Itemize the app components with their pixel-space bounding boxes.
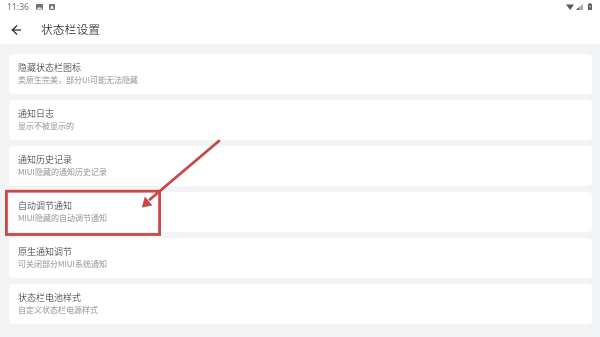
staticText: MIUI隐藏的自动调节通知 xyxy=(18,212,107,224)
staticText: 通知历史记录 xyxy=(18,153,73,166)
staticText: 类原生完美，部分UI可能无法隐藏 xyxy=(18,74,139,86)
button[interactable]: 通知历史记录 xyxy=(9,146,592,186)
button[interactable]: Back xyxy=(1,14,32,45)
button[interactable]: 原生通知调节 xyxy=(9,238,592,278)
staticText: 显示不被显示的 xyxy=(18,120,74,132)
staticText: 状态栏电池样式 xyxy=(18,291,82,304)
staticText: 隐藏状态栏图标 xyxy=(18,61,82,74)
staticText: 11:36 xyxy=(7,1,29,13)
staticText: 原生通知调节 xyxy=(18,245,73,258)
staticText: 状态栏设置 xyxy=(41,20,100,37)
button[interactable]: 自动调节通知 xyxy=(9,192,592,232)
button[interactable]: 通知日志 xyxy=(9,100,592,140)
staticText: 自动调节通知 xyxy=(18,199,73,212)
staticText: 自定义状态栏电源样式 xyxy=(18,304,98,316)
button[interactable]: 状态栏电池样式 xyxy=(9,284,592,324)
button[interactable]: 隐藏状态栏图标 xyxy=(9,54,592,94)
staticText: 通知日志 xyxy=(18,107,55,120)
staticText: MIUI隐藏的通知历史记录 xyxy=(18,166,107,178)
staticText: 可关闭部分MIUI系统通知 xyxy=(18,258,107,270)
